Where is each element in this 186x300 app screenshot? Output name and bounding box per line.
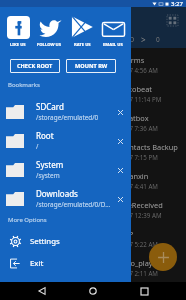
button[interactable]: Exit [0, 252, 131, 274]
staticText: Settings [30, 236, 60, 247]
staticText: Root [36, 130, 54, 141]
staticText: 0 [156, 35, 160, 44]
staticText: / [36, 142, 39, 151]
staticText: 5/17 11:14 PM [120, 95, 162, 103]
button[interactable]: CHECK ROOT [10, 59, 60, 73]
staticText: JMP [120, 229, 134, 239]
staticText: Alarms [120, 55, 145, 65]
staticText: /storage/emulated/0/Do... [36, 200, 114, 209]
button[interactable]: Grid view [167, 15, 178, 26]
staticText: kino_player [120, 258, 160, 268]
staticText: /storage/emulated/0 [36, 113, 99, 122]
staticText: EMAIL US [103, 42, 123, 48]
button[interactable]: Add [149, 243, 177, 271]
button[interactable]: Root [0, 126, 131, 155]
staticText: Autobeat [120, 84, 152, 94]
button[interactable]: Downloads [0, 184, 131, 213]
staticText: Contacts Backup [120, 142, 178, 152]
button[interactable]: Settings [0, 230, 131, 252]
staticText: 8/17 5:22 AM [120, 240, 158, 248]
staticText: LIKE US [10, 42, 26, 48]
staticText: ED [126, 35, 135, 44]
button[interactable]: kino_player [0, 258, 186, 287]
button[interactable]: MOUNT RW [66, 59, 116, 73]
staticText: More Options [8, 216, 47, 224]
staticText: Exit [30, 258, 44, 269]
button[interactable]: Home [84, 282, 102, 300]
button[interactable]: Recents [135, 282, 153, 300]
button[interactable]: Remove System [114, 164, 126, 176]
staticText: 4/17 4:56 AM [120, 66, 158, 74]
staticText: > [141, 34, 146, 45]
staticText: Chanxin [120, 171, 149, 181]
staticText: FileReceived [120, 200, 163, 210]
button[interactable]: Back [33, 282, 51, 300]
staticText: Beatbox [120, 113, 149, 123]
button[interactable]: Remove SDCard [114, 106, 126, 118]
staticText: MOUNT RW [75, 62, 108, 70]
button[interactable]: Remove Downloads [114, 193, 126, 205]
button[interactable]: Chanxin [0, 171, 186, 200]
staticText: 8/17 7:15 PM [120, 153, 158, 161]
staticText: SDCard [36, 101, 64, 112]
button[interactable]: RATE US [69, 15, 95, 48]
button[interactable]: Alarms [0, 55, 186, 84]
staticText: 4/17 12:39 AM [120, 211, 162, 219]
staticText: 8/17 4:41 AM [120, 182, 158, 190]
button[interactable]: FOLLOW US [36, 15, 63, 48]
staticText: 8/17 2:11 AM [120, 269, 158, 277]
staticText: CHECK ROOT [17, 62, 53, 70]
button[interactable]: LIKE US [5, 15, 31, 48]
staticText: FOLLOW US [37, 42, 62, 48]
staticText: RATE US [74, 42, 91, 48]
button[interactable]: EMAIL US [100, 15, 126, 48]
staticText: /system [36, 171, 60, 180]
staticText: Bookmarks [8, 81, 40, 89]
staticText: System [36, 159, 64, 170]
button[interactable]: FileReceived [0, 200, 186, 229]
button[interactable]: Remove Root [114, 135, 126, 147]
button[interactable]: JMP [0, 229, 186, 258]
staticText: 4/17 7:36 AM [120, 124, 158, 132]
staticText: 3:27 [171, 0, 183, 7]
button[interactable]: Contacts Backup [0, 142, 186, 171]
button[interactable]: Beatbox [0, 113, 186, 142]
button[interactable]: SDCard [0, 97, 131, 126]
staticText: Downloads [36, 188, 78, 199]
button[interactable]: System [0, 155, 131, 184]
button[interactable]: Autobeat [0, 84, 186, 113]
